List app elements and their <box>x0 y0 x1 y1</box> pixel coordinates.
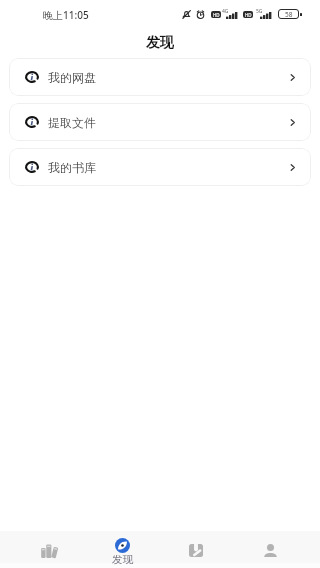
staticText: 晚上11:05 <box>43 8 89 22</box>
staticText: HD <box>213 12 220 18</box>
button[interactable]: 发现 <box>86 531 159 568</box>
staticText: 提取文件 <box>48 115 96 130</box>
staticText: 我的网盘 <box>48 70 96 85</box>
button[interactable]: 我的 <box>233 531 307 568</box>
staticText: 我的书库 <box>48 160 96 175</box>
staticText: 5G <box>256 8 263 15</box>
staticText: 发现 <box>146 34 174 50</box>
button[interactable]: 下载 <box>159 531 233 568</box>
staticText: 发现 <box>112 553 133 566</box>
button[interactable]: 书架 <box>13 531 86 568</box>
staticText: HD <box>245 12 252 18</box>
staticText: 4G <box>222 8 229 15</box>
button[interactable]: 我的网盘 <box>9 58 311 96</box>
button[interactable]: 我的书库 <box>9 148 311 186</box>
button[interactable]: 提取文件 <box>9 103 311 141</box>
staticText: 58 <box>285 10 293 19</box>
